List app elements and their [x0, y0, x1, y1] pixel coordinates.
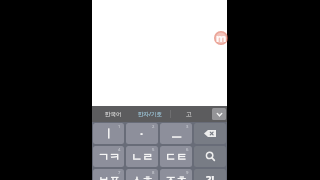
staticText: 8: [152, 170, 155, 176]
button[interactable]: Backspace: [194, 123, 226, 144]
staticText: 3: [186, 124, 189, 130]
staticText: ?!: [206, 172, 215, 180]
staticText: ㄴㄹ: [131, 150, 153, 164]
button[interactable]: 한자/기호: [132, 106, 169, 122]
button[interactable]: ㄴㄹ: [126, 146, 158, 167]
staticText: m: [216, 31, 227, 45]
button[interactable]: Search: [194, 146, 226, 167]
staticText: 한국어: [105, 111, 122, 118]
staticText: 고: [186, 110, 192, 118]
staticText: 한자/기호: [138, 110, 163, 118]
staticText: ㄱㅋ: [98, 150, 120, 164]
staticText: ㅈㅊ: [165, 173, 187, 180]
button[interactable]: ㄷㅌ: [160, 146, 192, 167]
button[interactable]: ㅂㅍ: [93, 169, 124, 180]
button[interactable]: ㄱㅋ: [93, 146, 124, 167]
staticText: 4: [118, 147, 121, 153]
button[interactable]: ㅈㅊ: [160, 169, 192, 180]
staticText: ㅣ: [103, 127, 114, 141]
staticText: 2: [152, 124, 155, 130]
button[interactable]: 고: [177, 106, 201, 122]
button[interactable]: 한국어: [94, 106, 132, 122]
staticText: 6: [186, 147, 189, 153]
staticText: ㅅㅎ: [131, 173, 153, 180]
button[interactable]: ㅣ: [93, 123, 124, 144]
staticText: 7: [118, 170, 121, 176]
staticText: ㅡ: [171, 127, 182, 141]
button[interactable]: ·: [126, 123, 158, 144]
staticText: ㄷㅌ: [165, 150, 187, 164]
staticText: 1: [118, 124, 121, 130]
staticText: 5: [152, 147, 155, 153]
button[interactable]: ㅅㅎ: [126, 169, 158, 180]
button[interactable]: Hide keyboard: [212, 108, 226, 120]
staticText: ·: [140, 126, 144, 141]
button[interactable]: Symbols: [194, 169, 226, 180]
button[interactable]: ㅡ: [160, 123, 192, 144]
staticText: 9: [186, 170, 189, 176]
staticText: ㅂㅍ: [98, 173, 120, 180]
